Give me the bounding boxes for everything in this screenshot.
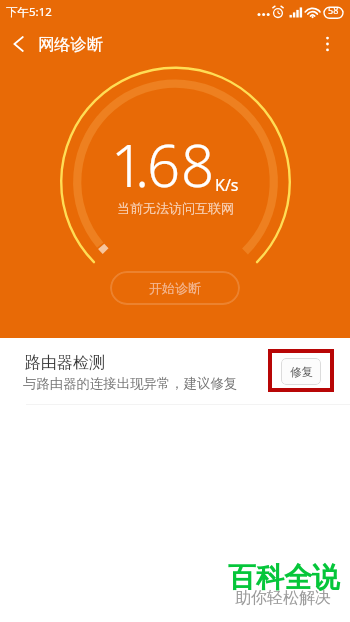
staticText: 开始诊断 [149, 280, 201, 296]
button[interactable]: 开始诊断 [110, 271, 240, 305]
staticText: 路由器检测 [25, 353, 105, 373]
staticText: 修复 [290, 365, 313, 379]
staticText: 助你轻松解决 [235, 588, 331, 608]
button[interactable]: Back [3, 22, 35, 66]
staticText: 网络诊断 [38, 34, 104, 55]
staticText: . [135, 125, 150, 204]
staticText: 8 [181, 125, 215, 204]
staticText: 下午5:12 [6, 4, 52, 20]
button[interactable]: 修复 [281, 358, 321, 385]
staticText: 58 [328, 4, 339, 16]
staticText: 1 [111, 125, 145, 204]
staticText: 与路由器的连接出现异常，建议修复 [23, 375, 238, 392]
staticText: 6 [147, 125, 181, 204]
staticText: K/s [215, 174, 239, 196]
staticText: 百科全说 [228, 560, 340, 595]
button[interactable]: More options [309, 22, 345, 66]
staticText: 当前无法访问互联网 [117, 200, 234, 216]
